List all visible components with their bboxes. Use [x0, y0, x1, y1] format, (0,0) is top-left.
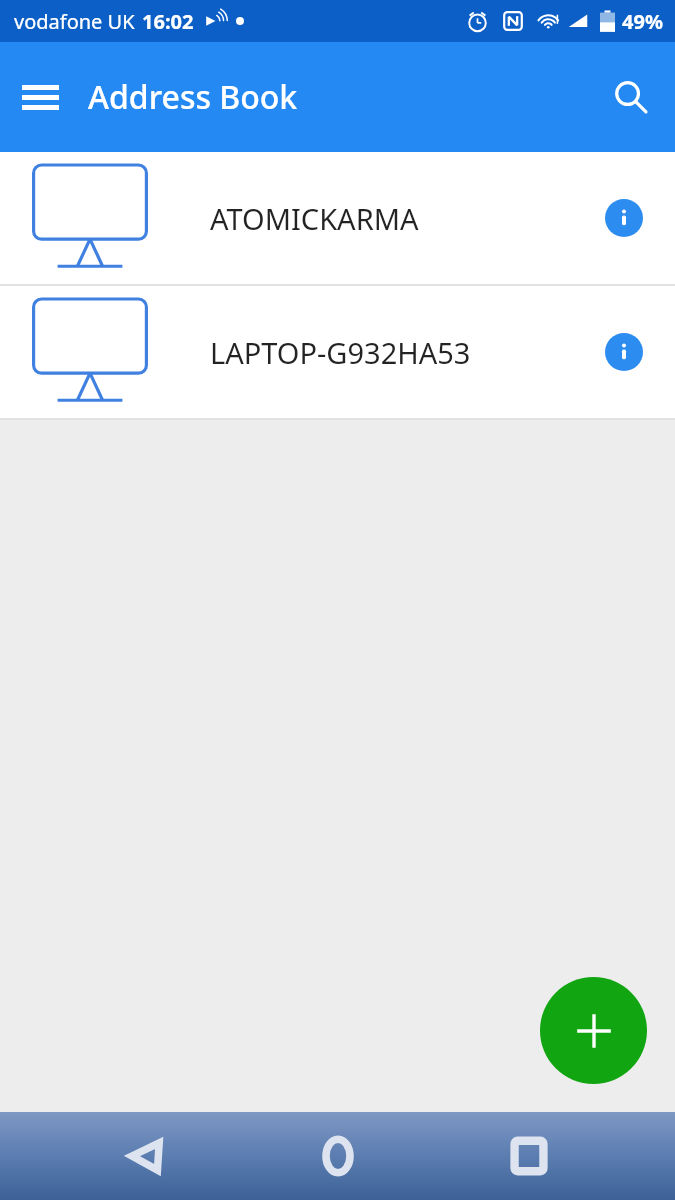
button[interactable]: Open navigation menu	[14, 71, 66, 123]
button[interactable]: ATOMICKARMA	[0, 152, 675, 284]
button[interactable]: Info about LAPTOP-G932HA53	[597, 325, 651, 379]
button[interactable]: Search	[603, 69, 659, 125]
staticText: Address Book	[88, 75, 298, 119]
button[interactable]: Back	[101, 1112, 191, 1200]
staticText: vodafone UK	[14, 8, 135, 35]
button[interactable]: Add contact	[540, 977, 647, 1084]
button[interactable]: Recent apps	[484, 1112, 574, 1200]
button[interactable]: Info about ATOMICKARMA	[597, 191, 651, 245]
staticText: 49%	[622, 8, 663, 35]
staticText: ATOMICKARMA	[210, 199, 597, 238]
staticText: 16:02	[142, 8, 194, 35]
staticText: LAPTOP-G932HA53	[210, 333, 597, 372]
button[interactable]: LAPTOP-G932HA53	[0, 286, 675, 418]
button[interactable]: Home	[293, 1112, 383, 1200]
